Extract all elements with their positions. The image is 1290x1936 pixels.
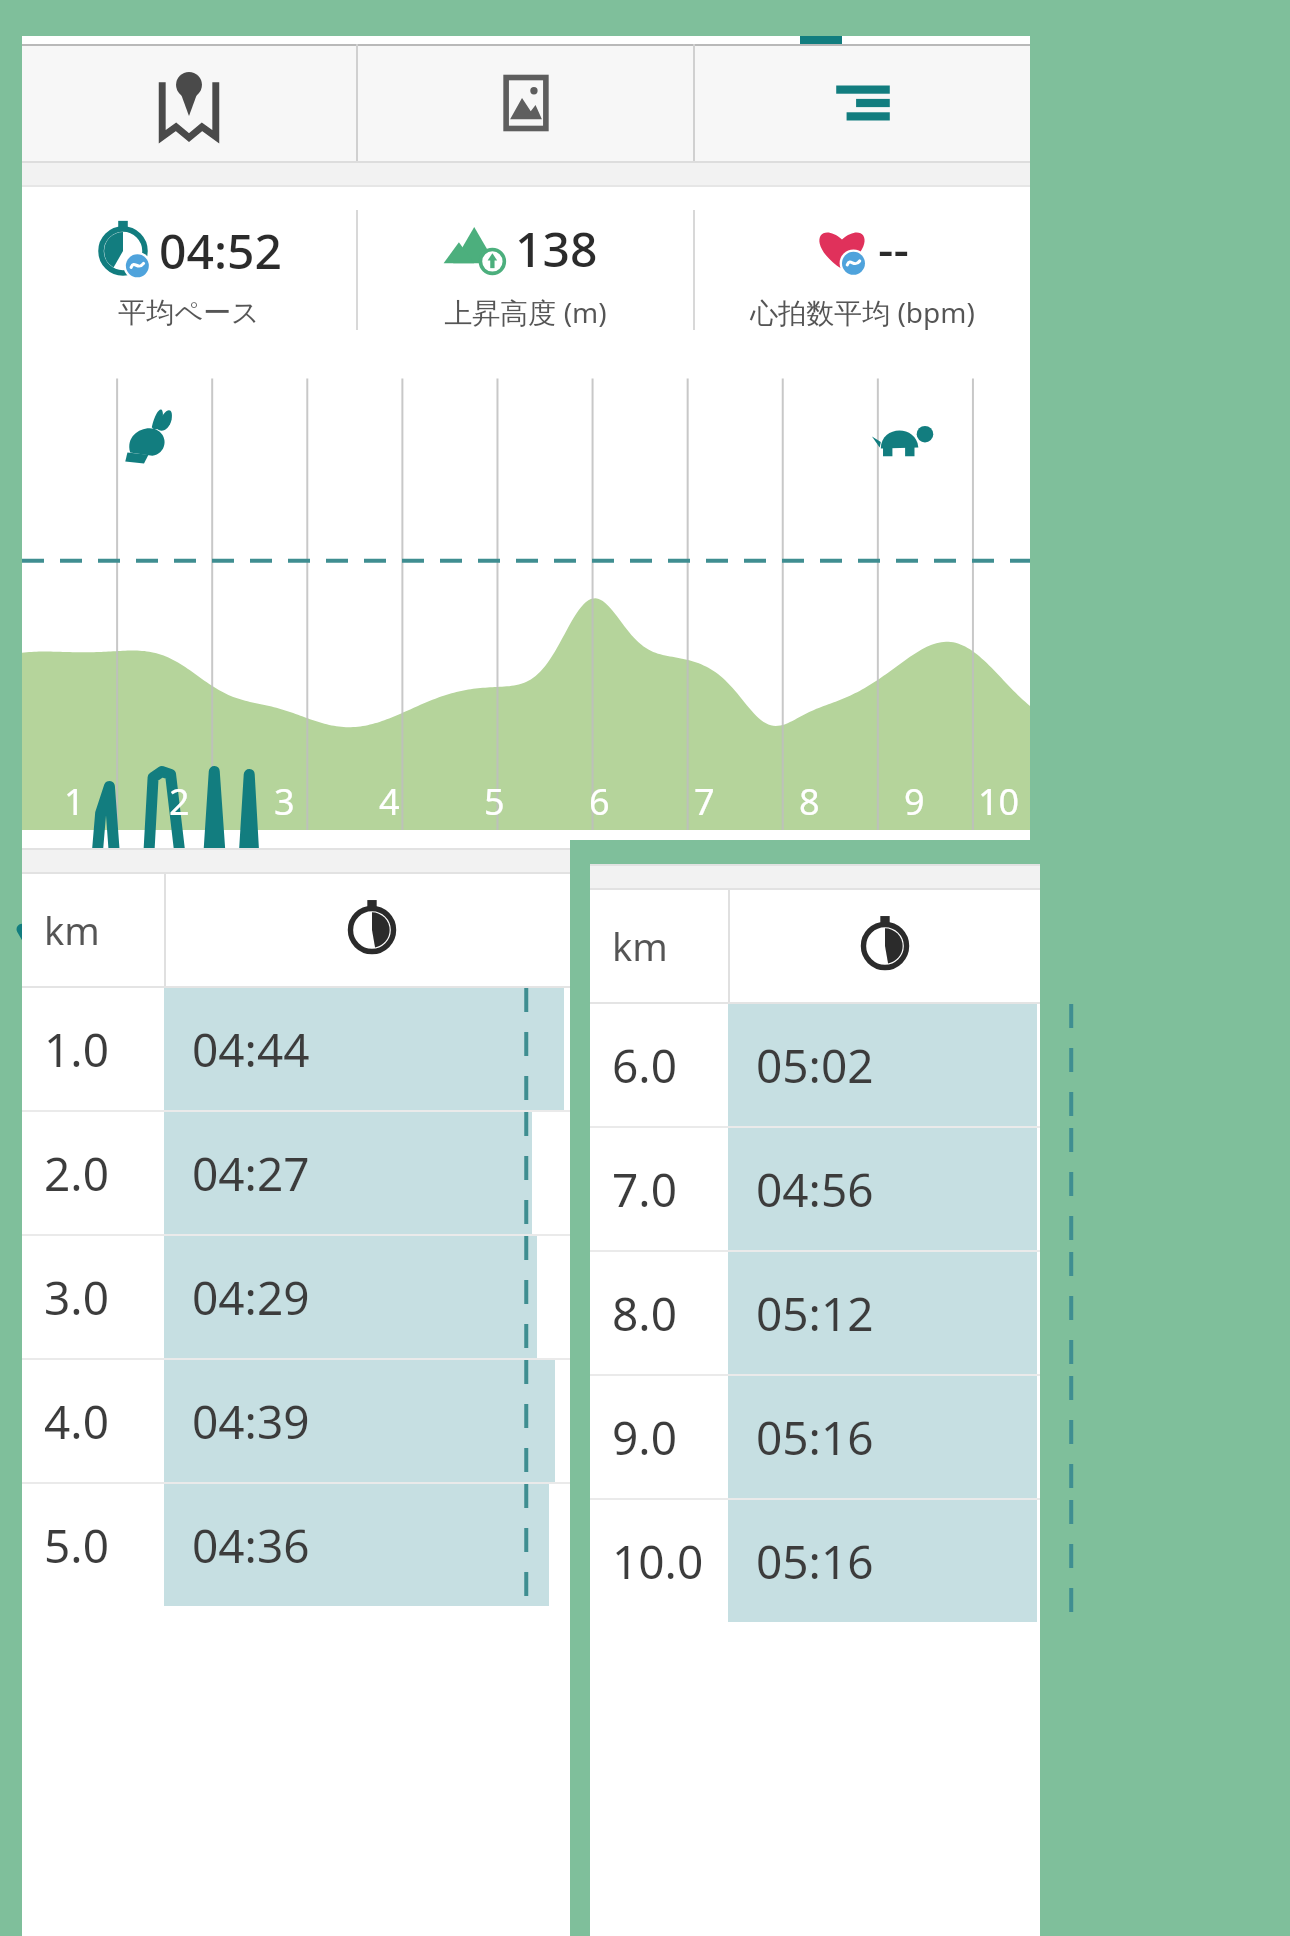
button[interactable]: Charts — [695, 44, 1030, 161]
button[interactable]: 10.0 — [590, 1500, 1040, 1622]
button[interactable]: 9.0 — [590, 1376, 1040, 1498]
staticText: 04:52 — [159, 218, 282, 283]
staticText: 04:39 — [192, 1390, 310, 1453]
button[interactable]: Map — [22, 44, 356, 161]
button[interactable]: Pace — [730, 890, 1040, 1002]
button[interactable]: 138 — [358, 192, 693, 347]
staticText: 9.0 — [612, 1406, 677, 1469]
staticText: 2 — [169, 777, 190, 826]
staticText: 7 — [694, 777, 715, 826]
staticText: 05:02 — [756, 1034, 874, 1097]
staticText: 8.0 — [612, 1282, 677, 1345]
button[interactable]: Pace — [166, 874, 578, 986]
staticText: 8 — [799, 777, 820, 826]
staticText: 5.0 — [44, 1514, 109, 1577]
staticText: 3 — [274, 777, 295, 826]
staticText: 上昇高度 (m) — [444, 293, 607, 331]
button[interactable]: km — [22, 874, 164, 986]
staticText: 04:36 — [192, 1514, 310, 1577]
staticText: 04:44 — [192, 1018, 310, 1081]
button[interactable]: 2.0 — [22, 1112, 578, 1234]
staticText: 10.0 — [612, 1530, 704, 1593]
button[interactable]: 7.0 — [590, 1128, 1040, 1250]
staticText: 04:29 — [192, 1266, 310, 1329]
staticText: 6 — [589, 777, 610, 826]
staticText: km — [612, 920, 668, 972]
staticText: 平均ペース — [118, 295, 260, 330]
staticText: km — [44, 904, 100, 956]
button[interactable]: 8.0 — [590, 1252, 1040, 1374]
staticText: 1.0 — [44, 1018, 109, 1081]
staticText: 10 — [978, 777, 1020, 826]
staticText: 2.0 — [44, 1142, 109, 1205]
button[interactable]: 04:52 — [22, 194, 356, 346]
button[interactable]: km — [590, 890, 728, 1002]
button[interactable]: 4.0 — [22, 1360, 578, 1482]
staticText: 05:16 — [756, 1406, 874, 1469]
staticText: 04:56 — [756, 1158, 874, 1221]
staticText: 9 — [904, 777, 925, 826]
staticText: 138 — [515, 216, 598, 281]
staticText: -- — [878, 216, 909, 281]
staticText: 5 — [484, 777, 505, 826]
staticText: 4.0 — [44, 1390, 109, 1453]
button[interactable]: -- — [695, 192, 1030, 347]
button[interactable]: 5.0 — [22, 1484, 578, 1606]
staticText: 1 — [64, 777, 85, 826]
staticText: 心拍数平均 (bpm) — [750, 293, 975, 331]
staticText: 7.0 — [612, 1158, 677, 1221]
staticText: 6.0 — [612, 1034, 677, 1097]
staticText: 4 — [379, 777, 400, 826]
staticText: 05:12 — [756, 1282, 874, 1345]
staticText: 04:27 — [192, 1142, 310, 1205]
button[interactable]: 6.0 — [590, 1004, 1040, 1126]
button[interactable]: 3.0 — [22, 1236, 578, 1358]
button[interactable]: Photos — [358, 44, 693, 161]
staticText: 3.0 — [44, 1266, 109, 1329]
staticText: 05:16 — [756, 1530, 874, 1593]
button[interactable]: 1.0 — [22, 988, 578, 1110]
